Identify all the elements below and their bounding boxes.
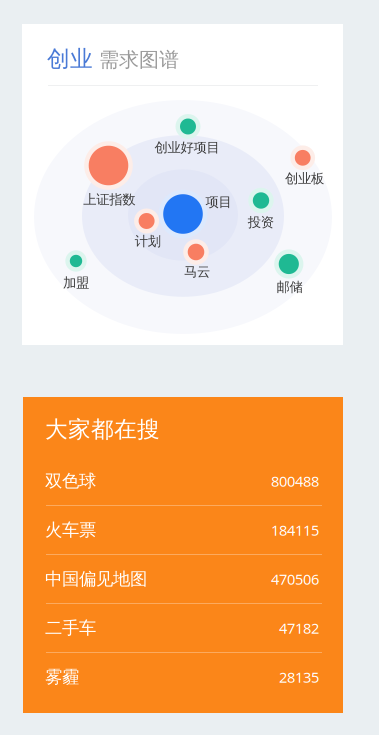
staticText: 创业 [47, 45, 93, 73]
staticText: 加盟 [63, 274, 89, 291]
staticText: 47182 [279, 618, 319, 638]
staticText: 项目 [206, 194, 232, 210]
staticText: 470506 [271, 569, 319, 589]
button[interactable]: 中国偏见地图 [23, 555, 343, 603]
button[interactable]: 双色球 [23, 457, 343, 505]
staticText: 中国偏见地图 [45, 568, 147, 590]
staticText: 投资 [248, 214, 274, 230]
staticText: 需求图谱 [99, 47, 179, 72]
staticText: 创业板 [285, 170, 324, 187]
staticText: 184115 [271, 520, 319, 540]
button[interactable]: 二手车 [23, 604, 343, 652]
staticText: 二手车 [45, 617, 96, 639]
staticText: 上证指数 [83, 191, 135, 208]
staticText: 计划 [135, 233, 161, 249]
staticText: 创业好项目 [154, 139, 219, 156]
staticText: 800488 [271, 471, 319, 491]
staticText: 雾霾 [45, 666, 79, 688]
staticText: 大家都在搜 [45, 416, 160, 443]
staticText: 邮储 [276, 279, 302, 295]
staticText: 火车票 [45, 519, 96, 541]
button[interactable]: 雾霾 [23, 653, 343, 701]
staticText: 马云 [184, 264, 210, 280]
button[interactable]: 火车票 [23, 506, 343, 554]
staticText: 双色球 [45, 470, 96, 492]
staticText: 28135 [279, 667, 319, 687]
